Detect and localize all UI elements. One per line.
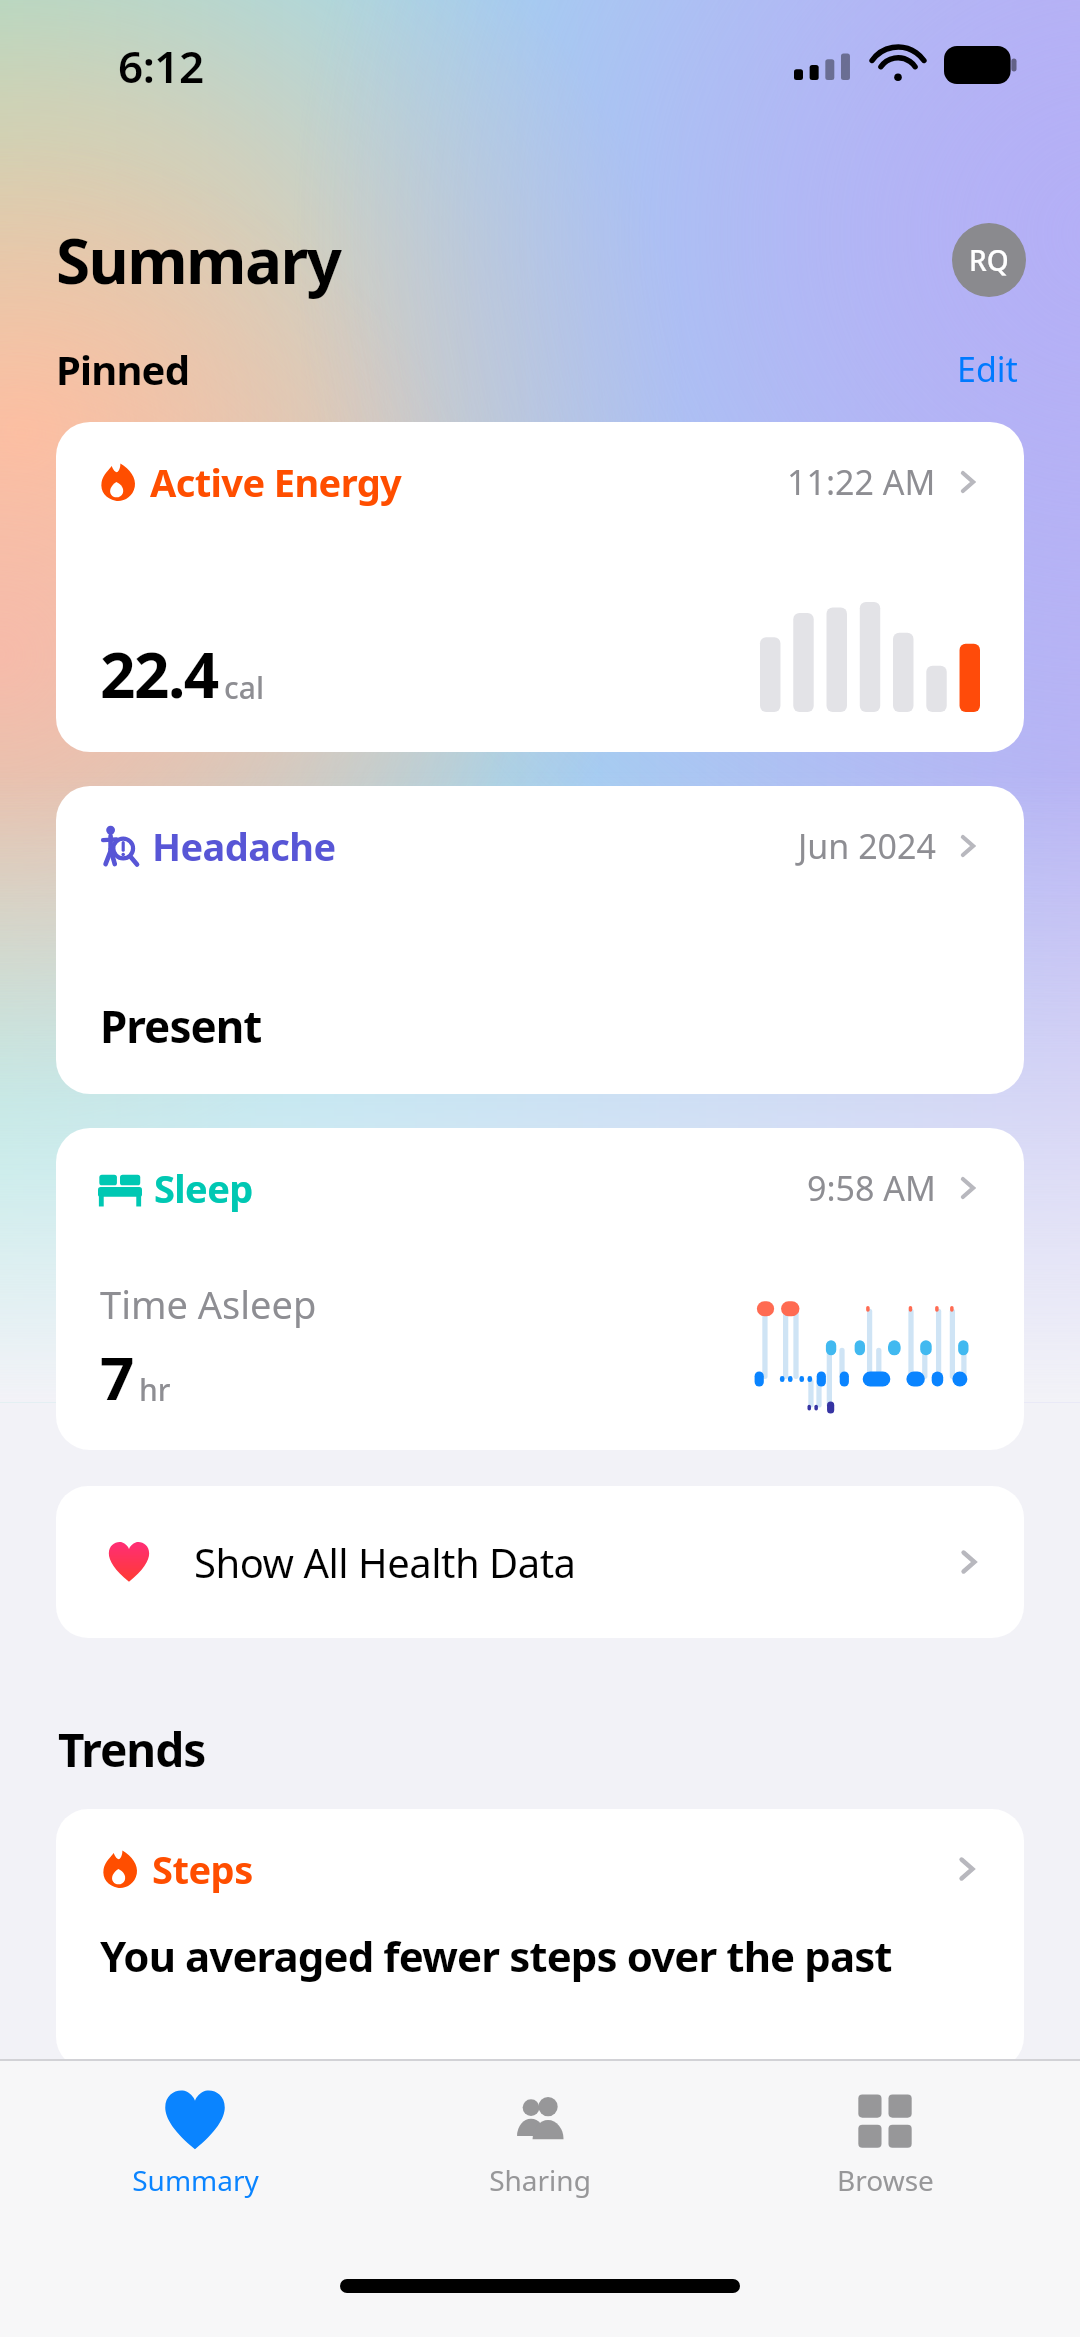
- button[interactable]: Browse: [735, 2083, 1035, 2203]
- staticText: Steps: [152, 1843, 253, 1895]
- staticText: 22.4: [100, 632, 218, 716]
- staticText: Browse: [837, 2161, 934, 2199]
- button[interactable]: Edit: [951, 342, 1024, 396]
- staticText: 9:58 AM: [807, 1165, 936, 1211]
- staticText: Summary: [132, 2161, 259, 2199]
- staticText: Trends: [58, 1718, 206, 1781]
- staticText: RQ: [969, 241, 1009, 279]
- staticText: Show All Health Data: [194, 1535, 576, 1589]
- staticText: 6:12: [118, 36, 204, 96]
- staticText: Time Asleep: [100, 1278, 317, 1330]
- staticText: Headache: [152, 820, 336, 872]
- staticText: cal: [224, 667, 264, 708]
- staticText: Pinned: [56, 342, 190, 396]
- staticText: Edit: [957, 346, 1018, 392]
- button[interactable]: Sharing: [390, 2083, 690, 2203]
- staticText: Sleep: [154, 1162, 253, 1214]
- button[interactable]: Headache: [56, 786, 1024, 1094]
- staticText: hr: [139, 1369, 171, 1410]
- staticText: Sharing: [489, 2161, 591, 2199]
- button[interactable]: Steps: [56, 1809, 1024, 2069]
- button[interactable]: Active Energy: [56, 422, 1024, 752]
- staticText: Active Energy: [150, 456, 402, 508]
- staticText: Summary: [56, 218, 341, 302]
- staticText: Present: [100, 996, 262, 1056]
- staticText: Jun 2024: [798, 823, 936, 869]
- staticText: 11:22 AM: [787, 459, 936, 505]
- button[interactable]: Sleep: [56, 1128, 1024, 1450]
- button[interactable]: Summary: [45, 2083, 345, 2203]
- staticText: You averaged fewer steps over the past: [100, 1927, 892, 1984]
- button[interactable]: Show All Health Data: [56, 1486, 1024, 1638]
- staticText: 7: [100, 1336, 133, 1418]
- button[interactable]: Profile: [952, 223, 1026, 297]
